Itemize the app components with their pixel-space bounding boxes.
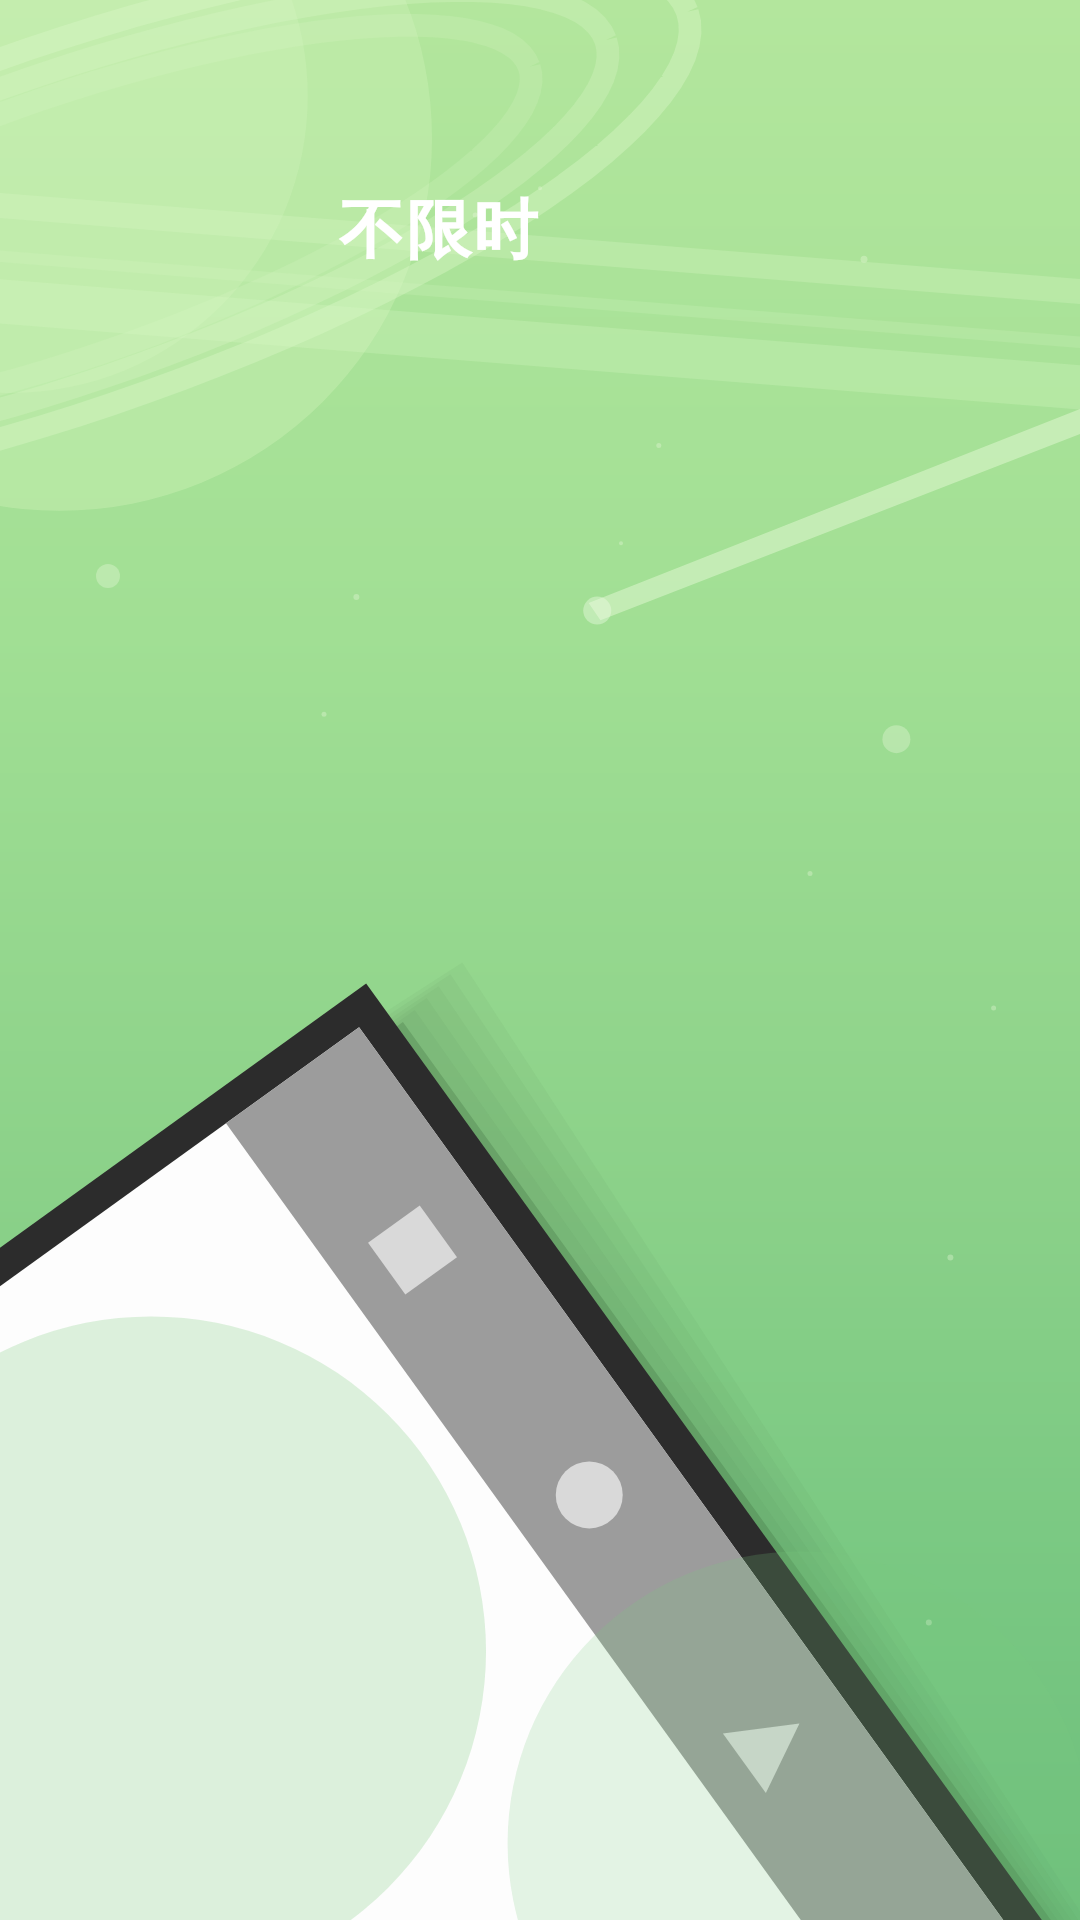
- button[interactable]: 不限时: [338, 190, 539, 271]
